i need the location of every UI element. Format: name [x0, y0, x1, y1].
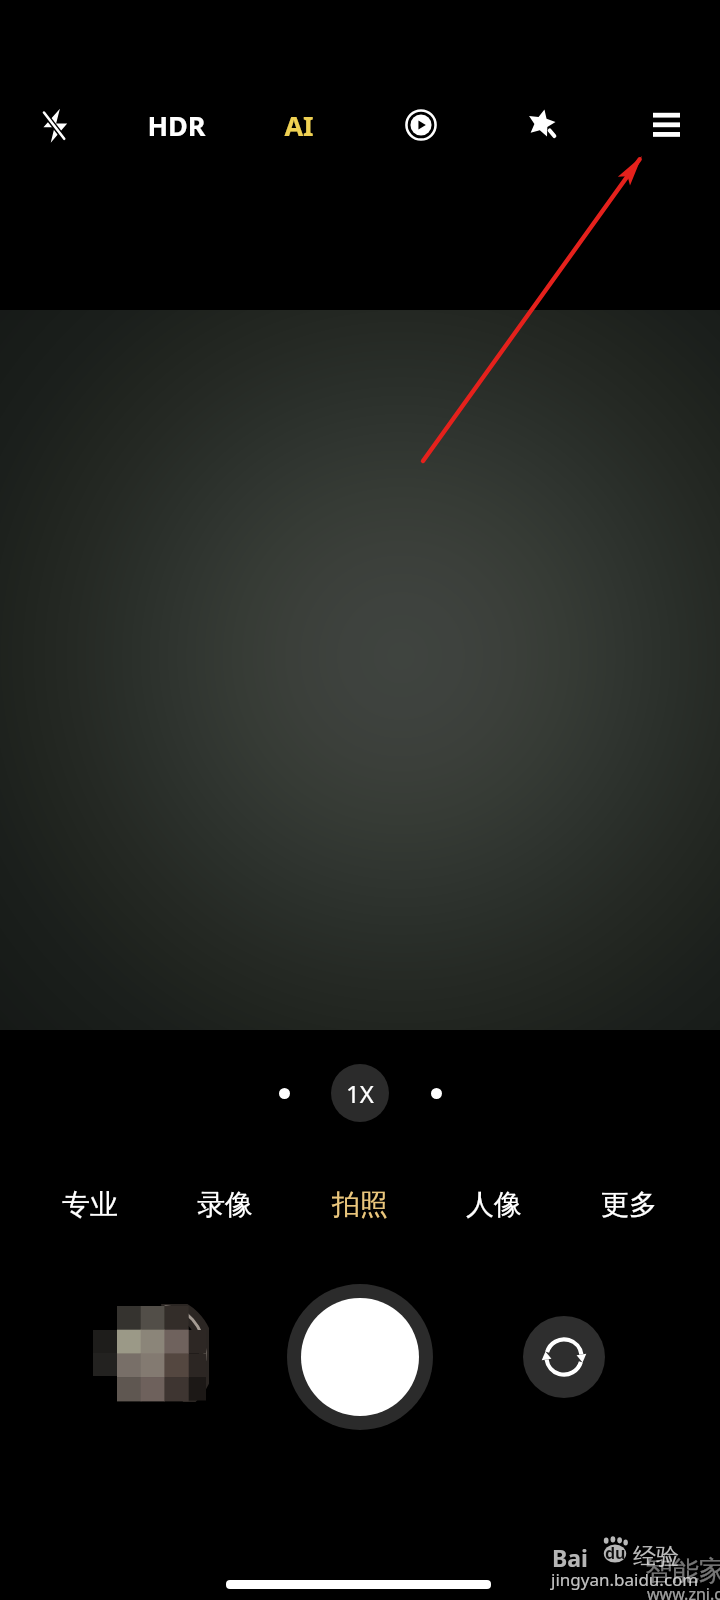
button[interactable]: 专业: [28, 1168, 152, 1240]
button[interactable]: 人像: [432, 1168, 556, 1240]
staticText: du: [605, 1542, 626, 1564]
button[interactable]: Settings menu: [637, 96, 695, 154]
button[interactable]: 录像: [163, 1168, 287, 1240]
staticText: 人像: [466, 1187, 522, 1222]
button[interactable]: 1X: [331, 1064, 389, 1122]
staticText: AI: [284, 107, 314, 144]
button[interactable]: Gallery: [85, 1290, 210, 1415]
button[interactable]: HDR: [131, 96, 221, 154]
button[interactable]: 更多: [567, 1168, 691, 1240]
staticText: 智能家: [645, 1554, 720, 1588]
button[interactable]: 拍照: [298, 1168, 422, 1240]
button[interactable]: Zoom out: [264, 1073, 304, 1113]
staticText: HDR: [147, 107, 206, 144]
staticText: www.znj.com: [647, 1583, 720, 1600]
staticText: 1X: [346, 1077, 374, 1110]
button[interactable]: Shutter: [287, 1284, 433, 1430]
button[interactable]: Zoom in: [416, 1073, 456, 1113]
button[interactable]: Flash off: [25, 96, 83, 154]
staticText: 经验: [633, 1542, 679, 1571]
button[interactable]: Beauty filter: [514, 96, 572, 154]
button[interactable]: Switch camera: [523, 1316, 605, 1398]
staticText: jingyan.baidu.com: [551, 1568, 699, 1591]
staticText: 更多: [601, 1187, 657, 1222]
staticText: 专业: [62, 1187, 118, 1222]
staticText: 拍照: [332, 1187, 388, 1222]
button[interactable]: Motion photo: [392, 96, 450, 154]
staticText: Bai: [552, 1542, 588, 1573]
button[interactable]: AI: [254, 96, 344, 154]
staticText: 录像: [197, 1187, 253, 1222]
